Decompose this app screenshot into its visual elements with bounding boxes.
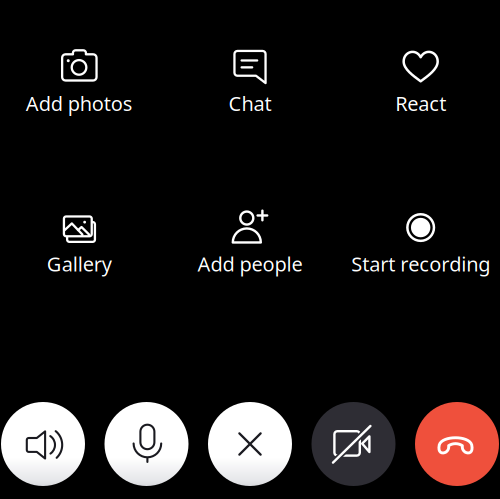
staticText: React	[395, 90, 446, 117]
button[interactable]: Add people	[167, 213, 333, 277]
staticText: Start recording	[351, 251, 490, 277]
button[interactable]: React	[333, 49, 500, 117]
button[interactable]: Close	[208, 402, 292, 486]
button[interactable]: Gallery	[0, 213, 167, 277]
staticText: Gallery	[47, 251, 112, 277]
button[interactable]: Mute microphone	[104, 402, 188, 486]
staticText: Chat	[228, 90, 271, 117]
button[interactable]: Start recording	[333, 213, 500, 277]
button[interactable]: End call	[415, 402, 499, 486]
button[interactable]: Add photos	[0, 49, 167, 117]
button[interactable]: Speaker	[1, 402, 85, 486]
staticText: Add people	[197, 251, 302, 277]
button[interactable]: Turn camera off	[311, 402, 395, 486]
button[interactable]: Chat	[167, 49, 333, 117]
staticText: Add photos	[26, 90, 133, 117]
